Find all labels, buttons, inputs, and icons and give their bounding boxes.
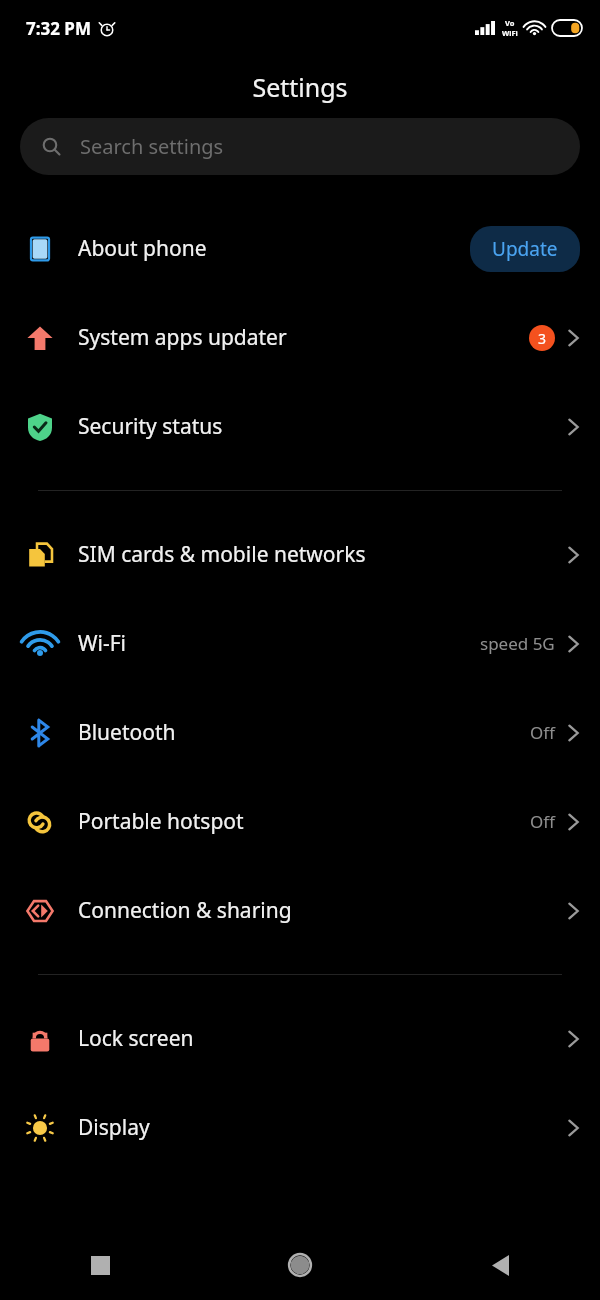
- button[interactable]: Portable hotspot: [0, 777, 600, 866]
- staticText: Security status: [78, 412, 223, 441]
- staticText: Portable hotspot: [78, 807, 244, 836]
- button[interactable]: Connection & sharing: [0, 866, 600, 955]
- button[interactable]: Search settings: [20, 118, 580, 175]
- button[interactable]: About phone: [0, 204, 600, 293]
- staticText: WiFi: [502, 28, 518, 38]
- staticText: Connection & sharing: [78, 896, 292, 925]
- staticText: Vo: [505, 18, 515, 28]
- staticText: Lock screen: [78, 1024, 194, 1053]
- staticText: Search settings: [80, 133, 224, 160]
- staticText: 7:32 PM: [26, 17, 91, 40]
- staticText: Display: [78, 1113, 150, 1142]
- staticText: SIM cards & mobile networks: [78, 540, 366, 569]
- button[interactable]: Update: [470, 226, 580, 272]
- button[interactable]: Display: [0, 1083, 600, 1172]
- button[interactable]: Lock screen: [0, 994, 600, 1083]
- staticText: 3: [538, 329, 547, 348]
- staticText: Update: [492, 236, 558, 262]
- button[interactable]: Recents: [0, 1230, 200, 1300]
- button[interactable]: Security status: [0, 382, 600, 471]
- button[interactable]: Home: [200, 1230, 400, 1300]
- staticText: Settings: [252, 70, 348, 104]
- staticText: Bluetooth: [78, 718, 176, 747]
- staticText: Off: [530, 721, 555, 744]
- button[interactable]: Bluetooth: [0, 688, 600, 777]
- staticText: About phone: [78, 234, 207, 263]
- button[interactable]: Back: [400, 1230, 600, 1300]
- staticText: Off: [530, 810, 555, 833]
- staticText: Wi-Fi: [78, 629, 127, 658]
- button[interactable]: Wi-Fi: [0, 599, 600, 688]
- staticText: speed 5G: [480, 632, 555, 655]
- staticText: System apps updater: [78, 323, 287, 352]
- button[interactable]: System apps updater: [0, 293, 600, 382]
- button[interactable]: SIM cards & mobile networks: [0, 510, 600, 599]
